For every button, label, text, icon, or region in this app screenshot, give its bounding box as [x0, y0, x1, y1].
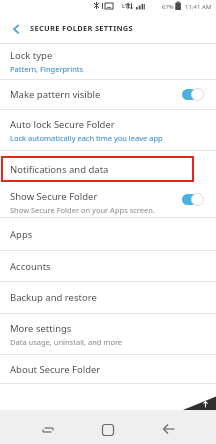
staticText: More settings — [10, 322, 72, 335]
staticText: Show Secure Folder on your Apps screen. — [10, 205, 155, 215]
staticText: Accounts — [10, 260, 51, 273]
staticText: Pattern, Fingerprints — [10, 64, 84, 74]
staticText: 67% — [162, 3, 174, 11]
button[interactable]: Backup and restore — [0, 282, 216, 313]
staticText: Backup and restore — [10, 291, 97, 304]
button[interactable]: About Secure Folder — [0, 355, 216, 383]
button[interactable] — [34, 416, 62, 444]
button[interactable]: Make pattern visible — [0, 80, 216, 109]
button[interactable] — [94, 416, 122, 444]
staticText: Apps — [10, 228, 33, 241]
button[interactable] — [0, 14, 28, 42]
staticText: SECURE FOLDER SETTINGS — [30, 23, 134, 33]
button[interactable]: Notifications and data — [0, 151, 216, 187]
staticText: Notifications and data — [10, 163, 109, 176]
staticText: Lock type — [10, 49, 53, 62]
staticText: 11:41 AM — [185, 3, 212, 11]
button[interactable] — [155, 416, 183, 444]
staticText: LTE — [122, 3, 131, 10]
staticText: Auto lock Secure Folder — [10, 118, 115, 131]
staticText: Show Secure Folder — [10, 190, 98, 203]
button[interactable]: Show Secure Folder — [0, 187, 216, 217]
staticText: Data usage, uninstall, and more — [10, 337, 123, 347]
button[interactable]: More settings — [0, 314, 216, 354]
staticText: Make pattern visible — [10, 88, 101, 101]
button[interactable]: Auto lock Secure Folder — [0, 110, 216, 150]
button[interactable]: Apps — [0, 218, 216, 250]
button[interactable]: Accounts — [0, 251, 216, 281]
staticText: About Secure Folder — [10, 363, 101, 376]
staticText: Lock automatically each time you leave a… — [10, 133, 163, 143]
button[interactable]: Lock type — [0, 44, 216, 79]
